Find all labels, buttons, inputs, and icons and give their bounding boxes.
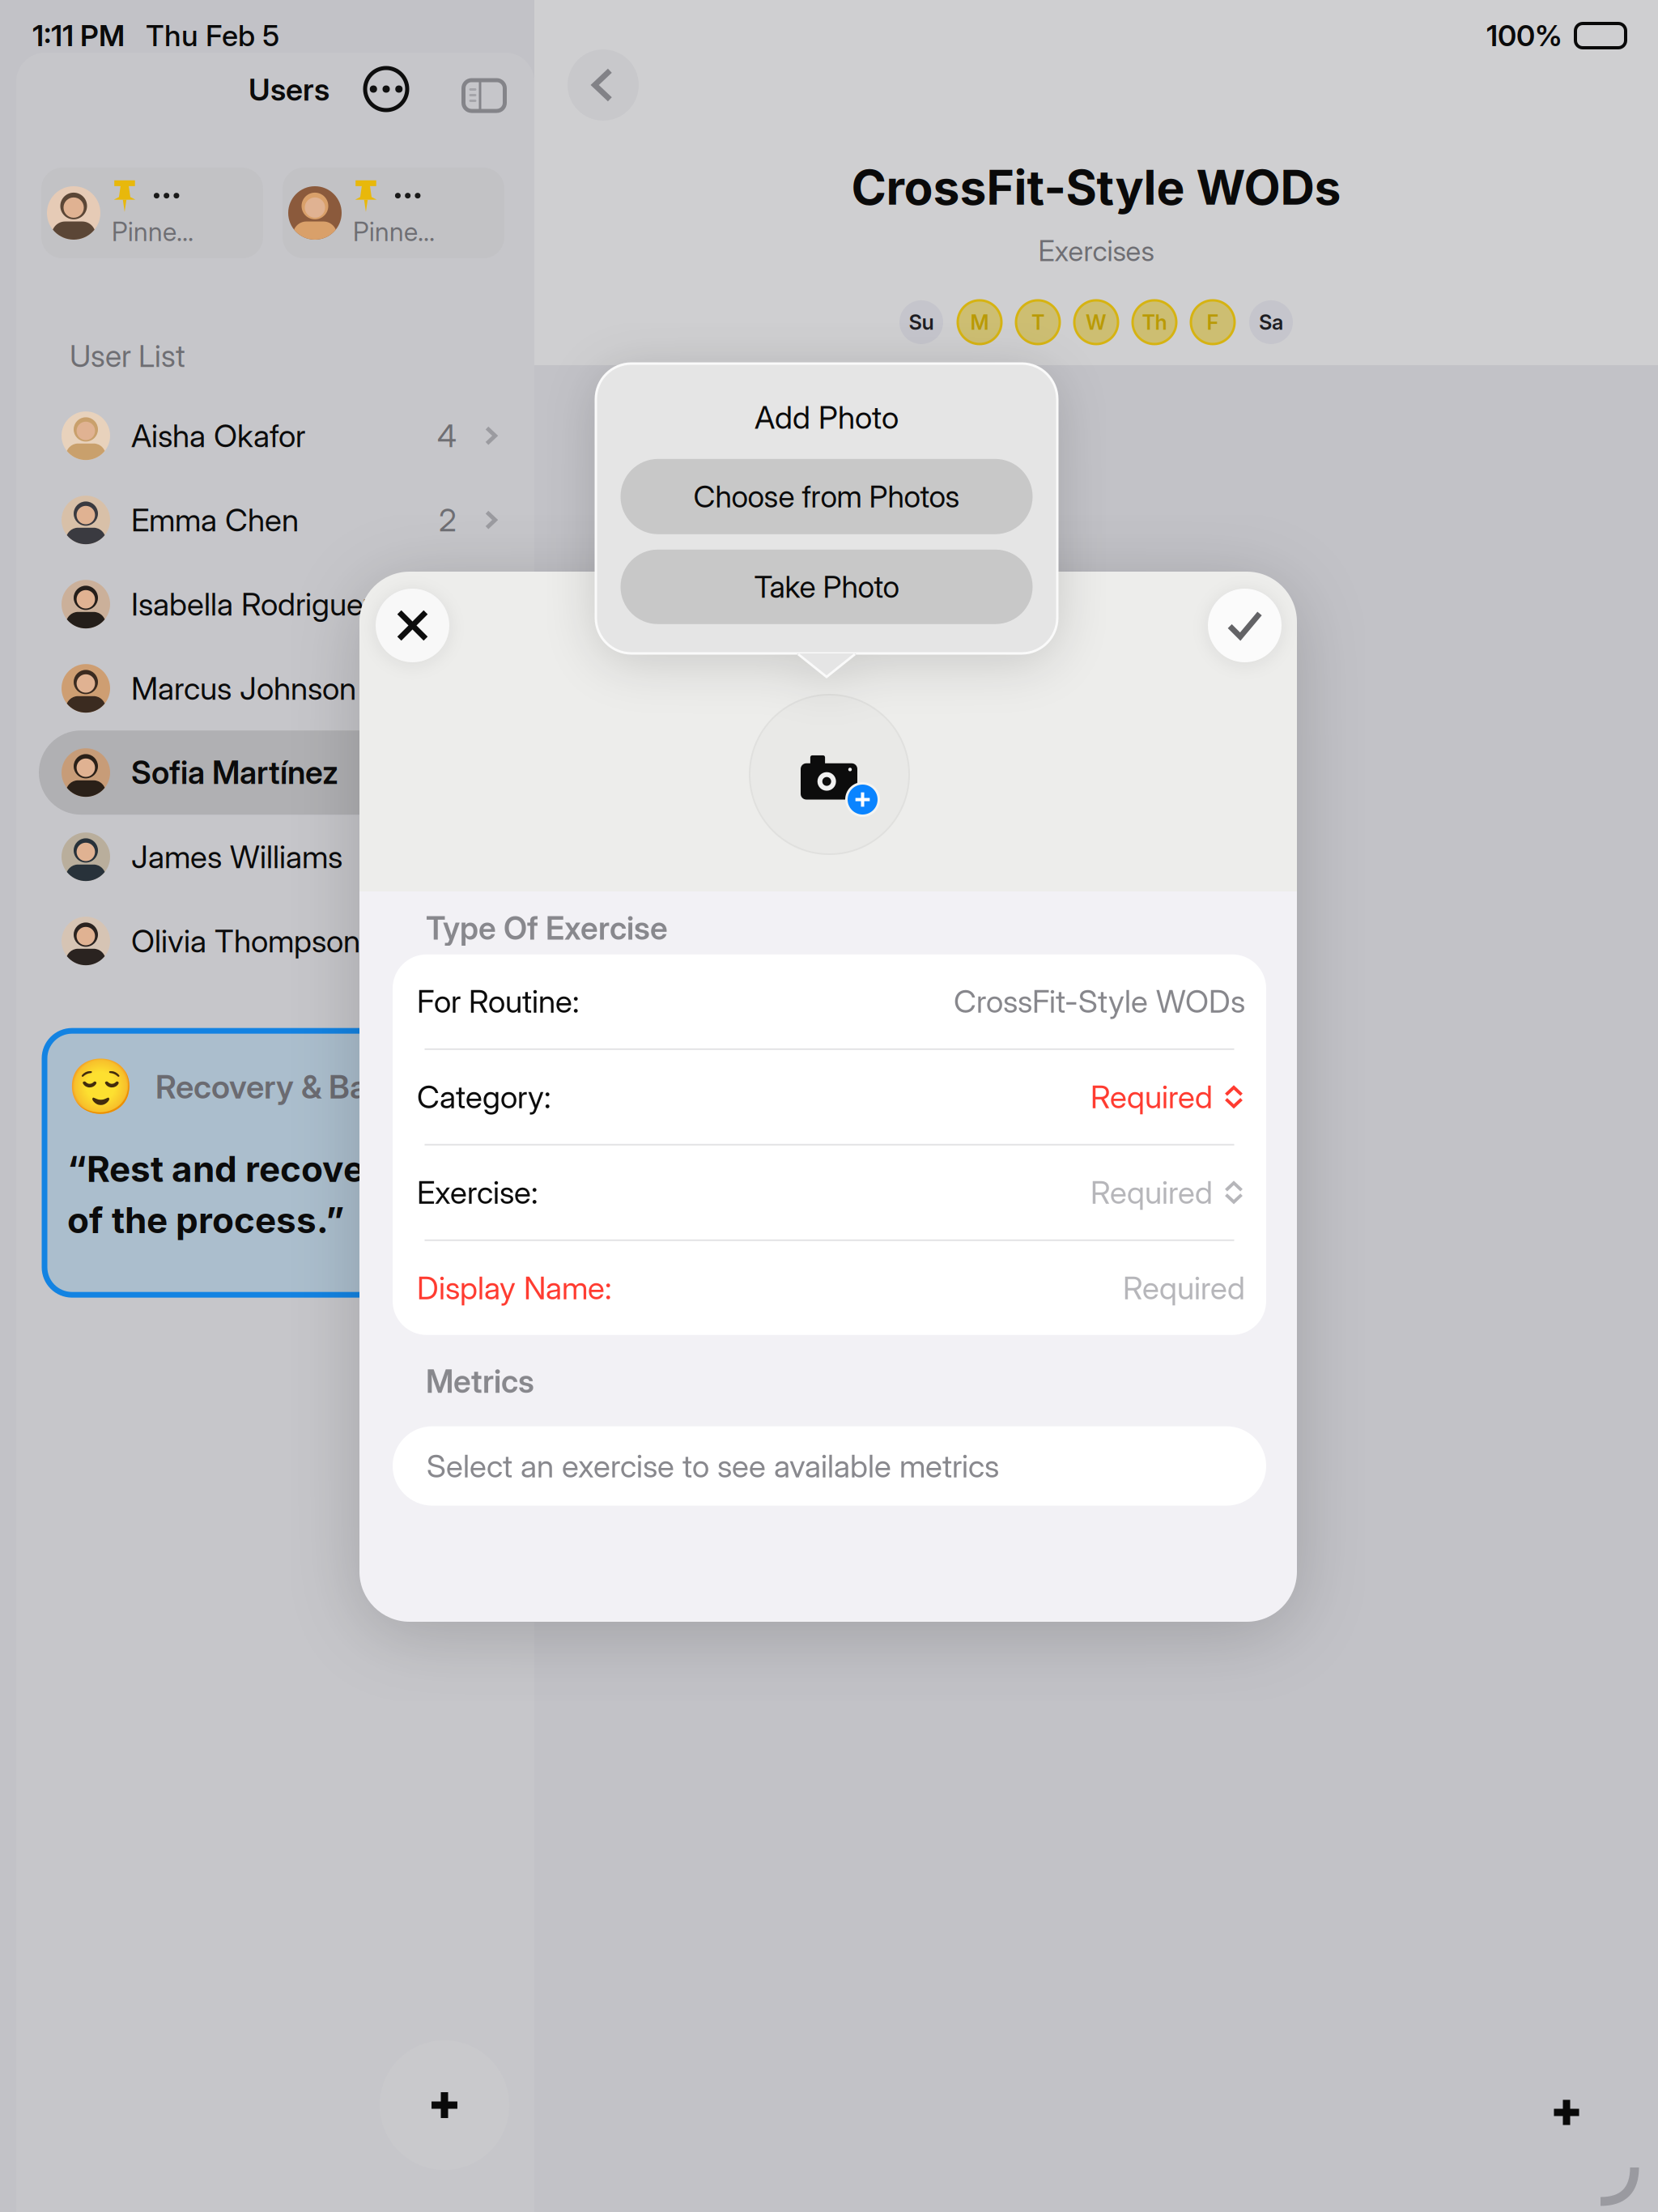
button[interactable]: Save — [1208, 589, 1282, 662]
button[interactable]: Olivia Thompson — [39, 899, 525, 983]
staticText: Sa — [1259, 310, 1283, 335]
button[interactable]: Sofia Martínez — [39, 730, 525, 815]
staticText: Type Of Exercise — [426, 909, 668, 947]
button[interactable]: M — [958, 300, 1001, 344]
staticText: Required — [1090, 1078, 1213, 1116]
staticText: 1:11 PM — [32, 18, 125, 53]
button[interactable]: Choose from Photos — [621, 459, 1033, 534]
button[interactable]: Isabella Rodriguez — [39, 562, 525, 646]
staticText: Olivia Thompson — [131, 922, 360, 960]
staticText: Required — [1123, 1269, 1245, 1307]
staticText: Su — [909, 310, 934, 335]
staticText: Category: — [417, 1078, 551, 1116]
button[interactable]: Su — [899, 300, 943, 344]
staticText: 4 — [437, 417, 457, 455]
button[interactable]: Aisha Okafor — [39, 394, 525, 478]
staticText: Th — [1142, 310, 1167, 335]
staticText: 100% — [1486, 18, 1562, 53]
button[interactable]: T — [1016, 300, 1060, 344]
button[interactable]: Take Photo — [621, 550, 1033, 624]
button[interactable]: Add Exercise — [1530, 2076, 1603, 2149]
staticText: T — [1031, 310, 1044, 335]
button[interactable]: For Routine: — [393, 954, 1266, 1050]
staticText: Required — [1090, 1174, 1213, 1211]
button[interactable]: Category: — [393, 1050, 1266, 1146]
staticText: Pinne… — [112, 216, 193, 247]
staticText: For Routine: — [417, 982, 579, 1020]
staticText: Exercises — [1038, 234, 1154, 268]
button[interactable]: James Williams — [39, 815, 525, 899]
staticText: CrossFit-Style WODs — [851, 159, 1341, 216]
staticText: Marcus Johnson — [131, 669, 356, 707]
staticText: Isabella Rodriguez — [131, 585, 378, 623]
staticText: “Rest and recovery are part — [67, 1147, 545, 1191]
staticText: Add Photo — [755, 398, 899, 436]
button[interactable]: Marcus Johnson — [39, 646, 525, 730]
staticText: Take Photo — [754, 569, 899, 605]
staticText: Choose from Photos — [693, 478, 960, 515]
staticText: User List — [70, 338, 185, 374]
staticText: 2 — [439, 501, 457, 539]
button[interactable]: More — [357, 60, 415, 118]
button[interactable]: Pinne… — [283, 168, 504, 258]
button[interactable]: Cancel — [376, 589, 449, 662]
button[interactable]: Pinne… — [41, 168, 263, 258]
button[interactable]: W — [1074, 300, 1118, 344]
button[interactable]: F — [1191, 300, 1235, 344]
button[interactable]: Back — [568, 49, 639, 121]
staticText: W — [1086, 310, 1107, 335]
staticText: Sofia Martínez — [131, 754, 338, 792]
staticText: Display Name: — [417, 1269, 611, 1307]
staticText: Metrics — [426, 1363, 534, 1400]
staticText: Users — [249, 71, 329, 108]
button[interactable]: Exercise: — [393, 1146, 1266, 1241]
staticText: F — [1207, 310, 1219, 335]
staticText: Aisha Okafor — [131, 417, 305, 455]
staticText: of the process.” — [67, 1199, 344, 1242]
staticText: Select an exercise to see available metr… — [427, 1447, 999, 1485]
staticText: Recovery & Balance — [155, 1067, 447, 1106]
button[interactable]: Emma Chen — [39, 478, 525, 562]
staticText: Emma Chen — [131, 501, 299, 539]
staticText: Pinne… — [353, 216, 435, 247]
staticText: 😌 — [67, 1055, 134, 1118]
button[interactable]: Display Name: — [393, 1241, 1266, 1335]
staticText: James Williams — [131, 838, 342, 876]
button[interactable]: Add User — [380, 2040, 509, 2170]
staticText: Exercise: — [417, 1174, 538, 1211]
button[interactable]: Toggle Sidebar — [455, 66, 513, 125]
staticText: CrossFit-Style WODs — [954, 982, 1245, 1020]
button[interactable]: Sa — [1249, 300, 1293, 344]
button[interactable]: Th — [1133, 300, 1176, 344]
staticText: M — [970, 310, 989, 335]
staticText: Thu Feb 5 — [146, 18, 279, 53]
